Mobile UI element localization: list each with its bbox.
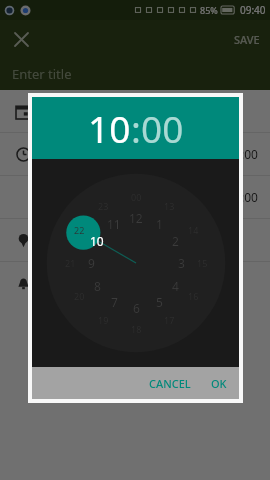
staticText: 1 [156, 216, 163, 232]
button[interactable]: 1 day before as email [0, 304, 270, 334]
button[interactable]: 00 [141, 103, 184, 153]
staticText: 5 [156, 294, 163, 310]
staticText: 7 [111, 294, 118, 310]
staticText: 3 [178, 255, 185, 271]
button[interactable]: Clock face [32, 159, 239, 367]
button[interactable]: 10 [88, 103, 131, 153]
staticText: 2 [172, 233, 179, 249]
staticText: 00 [141, 103, 184, 153]
staticText: 12 [129, 210, 143, 226]
staticText: OK [211, 376, 227, 391]
staticText: 00 [131, 191, 142, 203]
staticText: 6 [133, 300, 140, 316]
staticText: 20 [74, 290, 85, 302]
staticText: 22 [74, 224, 85, 236]
staticText: 11 [107, 216, 121, 232]
button[interactable]: OK [205, 370, 233, 397]
staticText: 4 [172, 278, 179, 294]
staticText: :00 [241, 146, 258, 162]
staticText: : [131, 103, 141, 153]
staticText: 9 [88, 255, 95, 271]
staticText: :00 [241, 189, 258, 205]
button[interactable]: Add reminder [0, 364, 270, 394]
staticText: 23 [98, 200, 109, 212]
button[interactable] [0, 219, 270, 261]
staticText: 18 [131, 323, 142, 335]
staticText: Enter title [12, 65, 72, 83]
staticText: 8 [94, 278, 101, 294]
staticText: 15 [197, 257, 208, 269]
staticText: 85% [200, 4, 218, 16]
button[interactable]: :00 [0, 176, 270, 218]
staticText: 10 [90, 233, 104, 249]
staticText: SAVE [234, 32, 260, 47]
button[interactable] [0, 90, 270, 132]
staticText: 10 [88, 103, 131, 153]
button[interactable]: :00 [0, 133, 270, 175]
button[interactable]: 1 week before as email [0, 334, 270, 364]
button[interactable]: Close [6, 24, 36, 54]
staticText: CANCEL [149, 376, 191, 391]
staticText: 09:40 [240, 3, 266, 17]
button[interactable]: CANCEL [143, 370, 197, 397]
button[interactable] [0, 262, 270, 304]
button[interactable]: SAVE [224, 24, 270, 55]
